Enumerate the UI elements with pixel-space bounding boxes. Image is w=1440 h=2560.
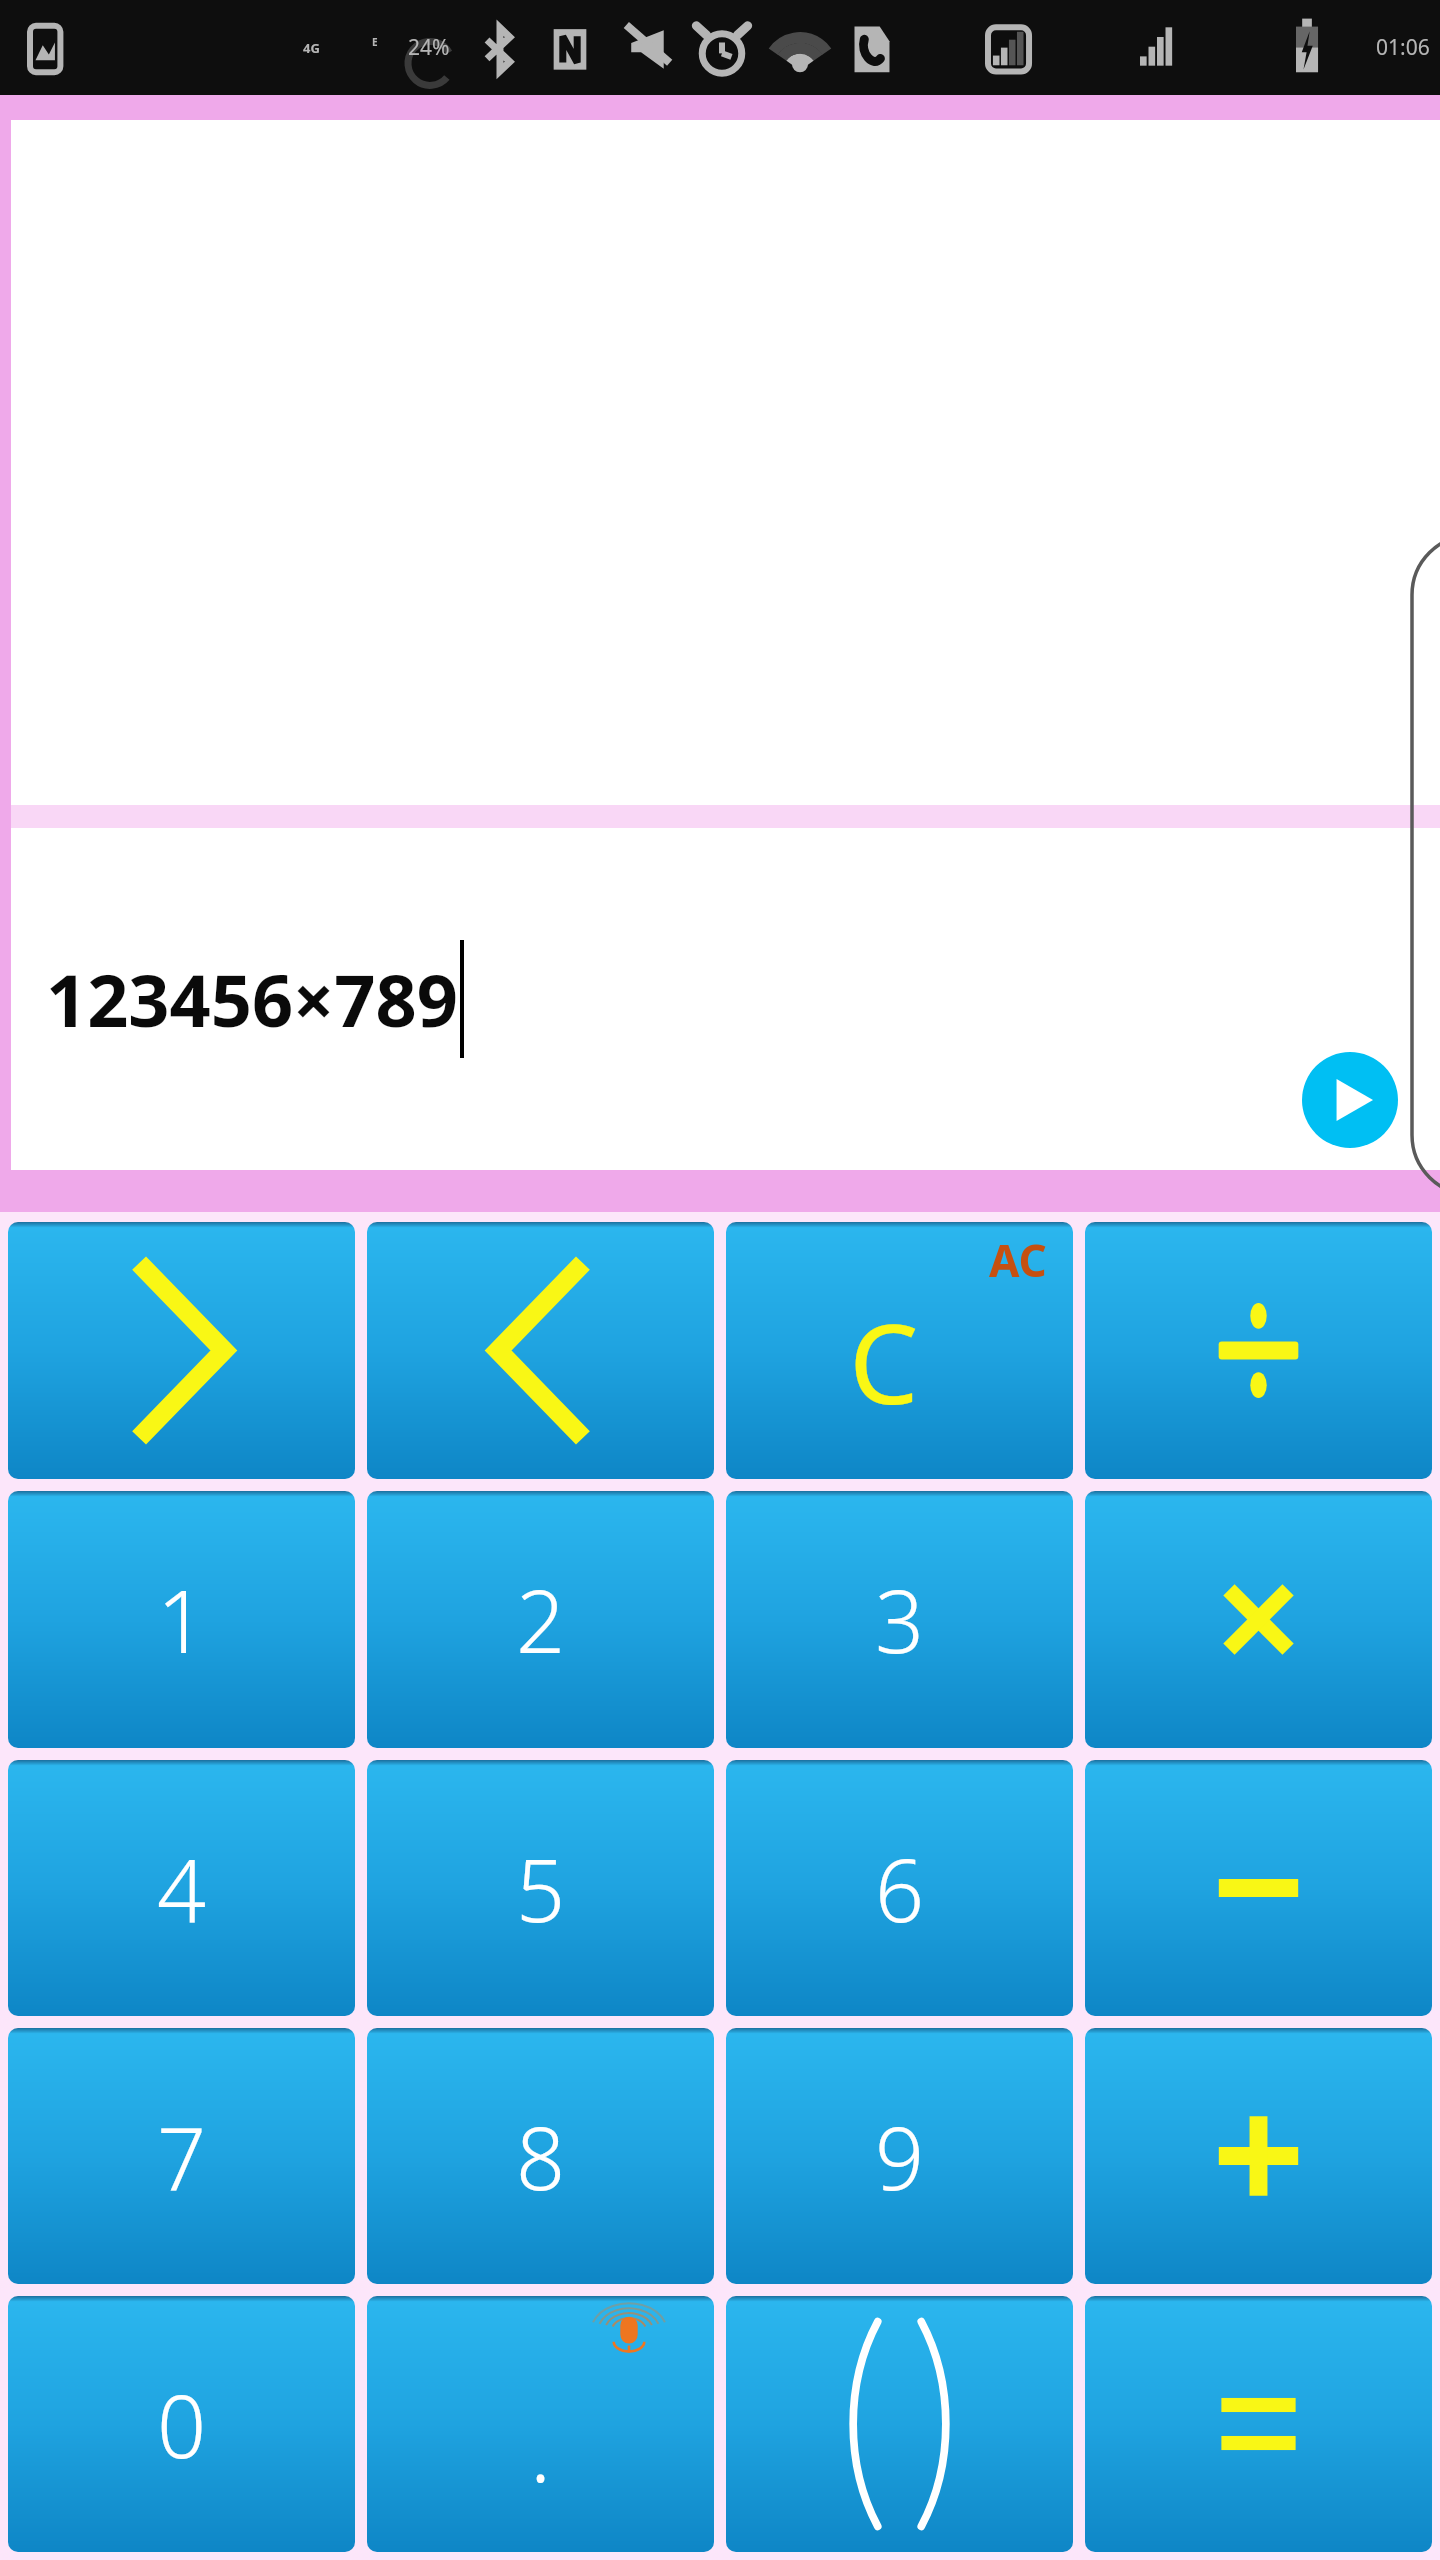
button[interactable]: 4 — [8, 1760, 355, 2016]
button[interactable]: Minus — [1085, 1760, 1432, 2016]
staticText: . — [530, 2390, 551, 2507]
button[interactable]: Move cursor left — [8, 1222, 355, 1479]
staticText: 24% — [408, 33, 450, 62]
staticText: 123456×789 — [46, 950, 458, 1048]
other: Plus — [1085, 2028, 1432, 2284]
button[interactable]: 1 — [8, 1491, 355, 1748]
staticText: 4 — [157, 1830, 207, 1947]
button[interactable]: . — [367, 2296, 714, 2552]
staticText: 8 — [516, 2098, 566, 2215]
button[interactable]: 0 — [8, 2296, 355, 2552]
staticText: 3 — [875, 1561, 925, 1678]
staticText: AC — [989, 1230, 1047, 1290]
other: Move cursor right — [367, 1222, 714, 1479]
button[interactable]: Parentheses — [726, 2296, 1073, 2552]
staticText: 9 — [875, 2098, 925, 2215]
button[interactable]: 123456×789 — [11, 828, 1440, 1170]
other: Minus — [1085, 1760, 1432, 2016]
staticText: 6 — [875, 1830, 925, 1947]
button[interactable]: Evaluate — [1302, 1052, 1398, 1148]
button[interactable] — [11, 120, 1440, 805]
staticText: 7 — [157, 2098, 207, 2215]
button[interactable]: Plus — [1085, 2028, 1432, 2284]
button[interactable]: 6 — [726, 1760, 1073, 2016]
staticText: 4G — [303, 39, 320, 57]
button[interactable]: 5 — [367, 1760, 714, 2016]
button[interactable]: C — [726, 1222, 1073, 1479]
button[interactable]: Move cursor right — [367, 1222, 714, 1479]
button[interactable]: 2 — [367, 1491, 714, 1748]
other: Move cursor left — [8, 1222, 355, 1479]
staticText: E — [372, 35, 378, 49]
staticText: 1 — [157, 1561, 207, 1678]
staticText: C — [849, 1286, 919, 1436]
button[interactable]: 9 — [726, 2028, 1073, 2284]
button[interactable]: 7 — [8, 2028, 355, 2284]
button[interactable]: 8 — [367, 2028, 714, 2284]
button[interactable]: Divide — [1085, 1222, 1432, 1479]
other: Parentheses — [726, 2296, 1073, 2552]
other: Multiply — [1085, 1491, 1432, 1748]
staticText: 5 — [516, 1830, 566, 1947]
button[interactable]: Equals — [1085, 2296, 1432, 2552]
staticText: 01:06 — [1376, 33, 1430, 62]
staticText: 0 — [157, 2366, 207, 2483]
button[interactable]: Voice input — [600, 2300, 658, 2358]
button[interactable]: 3 — [726, 1491, 1073, 1748]
other: Divide — [1085, 1222, 1432, 1479]
staticText: 2 — [516, 1561, 566, 1678]
other: Equals — [1085, 2296, 1432, 2552]
button[interactable]: Multiply — [1085, 1491, 1432, 1748]
